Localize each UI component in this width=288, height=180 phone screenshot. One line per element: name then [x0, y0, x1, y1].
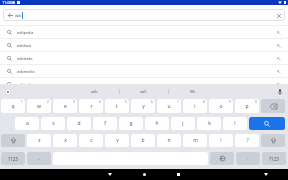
other: Insert suggestion — [274, 54, 283, 63]
staticText: 8 — [203, 100, 205, 104]
button[interactable]: wikipedia commons — [0, 78, 288, 90]
staticText: ? — [246, 137, 249, 144]
button[interactable]: i — [183, 99, 207, 113]
button[interactable]: , — [27, 152, 51, 165]
staticText: 1 — [21, 100, 23, 104]
button[interactable]: p — [235, 99, 259, 113]
button[interactable]: ?123 — [262, 152, 286, 165]
staticText: wik — [91, 89, 98, 95]
staticText: n — [167, 137, 171, 144]
other: Insert suggestion — [274, 80, 283, 89]
staticText: y — [142, 103, 145, 110]
staticText: s — [52, 120, 55, 127]
staticText: z — [38, 137, 41, 144]
button[interactable]: s — [41, 117, 65, 130]
button[interactable] — [1, 134, 25, 147]
button[interactable]: Back — [3, 9, 285, 21]
staticText: will — [140, 89, 147, 95]
other: Insert suggestion — [274, 41, 283, 50]
button[interactable]: ! — [209, 134, 233, 147]
button[interactable]: m — [183, 134, 207, 147]
button[interactable]: d — [67, 117, 91, 130]
button[interactable]: wikimedia — [0, 65, 288, 77]
staticText: 3 — [73, 100, 75, 104]
button[interactable]: c — [79, 134, 103, 147]
staticText: ?123 — [269, 156, 279, 162]
staticText: 4 — [99, 100, 101, 104]
button[interactable]: wik — [70, 84, 119, 99]
staticText: 9 — [229, 100, 231, 104]
staticText: a — [26, 120, 29, 127]
button[interactable]: q — [1, 99, 25, 113]
staticText: wik — [15, 13, 22, 19]
staticText: 6 — [151, 100, 153, 104]
staticText: wikimedia — [17, 69, 35, 74]
button[interactable]: ?123 — [1, 152, 25, 165]
staticText: v — [116, 137, 119, 144]
staticText: 7 — [177, 100, 179, 104]
staticText: u — [167, 103, 171, 110]
staticText: wikipedia commons — [17, 82, 52, 87]
staticText: ?123 — [8, 156, 18, 162]
staticText: 5 — [125, 100, 127, 104]
button[interactable] — [249, 117, 285, 130]
staticText: d — [77, 120, 81, 127]
staticText: i — [194, 103, 196, 110]
button[interactable]: f — [93, 117, 117, 130]
button[interactable]: Hide keyboard — [260, 169, 272, 180]
staticText: 0 — [255, 100, 257, 104]
button[interactable]: will — [119, 84, 168, 99]
button[interactable]: a — [15, 117, 39, 130]
button[interactable]: ? — [235, 134, 259, 147]
button[interactable]: Home — [138, 169, 150, 180]
button[interactable]: h — [145, 117, 169, 130]
button[interactable]: wikihow — [0, 39, 288, 51]
button[interactable]: wikileaks — [0, 52, 288, 64]
staticText: q — [11, 103, 15, 110]
button[interactable]: y — [131, 99, 155, 113]
staticText: m — [193, 137, 198, 144]
button[interactable]: Google assistant — [2, 86, 13, 97]
staticText: ! — [220, 137, 222, 144]
button[interactable]: w — [27, 99, 51, 113]
button[interactable]: x — [53, 134, 77, 147]
button[interactable]: wikipedia — [0, 26, 288, 38]
button[interactable]: Voice search — [274, 86, 285, 97]
button[interactable]: e — [53, 99, 77, 113]
staticText: Wi — [190, 89, 195, 95]
staticText: k — [208, 120, 211, 127]
button[interactable]: k — [197, 117, 221, 130]
staticText: w — [37, 103, 41, 110]
button[interactable]: z — [27, 134, 51, 147]
staticText: g — [129, 120, 133, 127]
button[interactable]: v — [105, 134, 129, 147]
button[interactable]: j — [171, 117, 195, 130]
button[interactable]: Back — [104, 169, 116, 180]
button[interactable]: t — [105, 99, 129, 113]
button[interactable]: b — [131, 134, 155, 147]
other: Insert suggestion — [274, 67, 283, 76]
button[interactable]: Clear search — [274, 11, 283, 20]
button[interactable]: r — [79, 99, 103, 113]
button[interactable]: o — [209, 99, 233, 113]
button[interactable]: g — [119, 117, 143, 130]
button[interactable] — [210, 152, 234, 165]
staticText: , — [38, 155, 40, 162]
other: Insert suggestion — [274, 28, 283, 37]
staticText: . — [247, 155, 249, 162]
button[interactable]: Recent apps — [172, 169, 184, 180]
staticText: x — [64, 137, 67, 144]
button[interactable] — [261, 99, 285, 113]
button[interactable]: u — [157, 99, 181, 113]
button[interactable]: l — [223, 117, 247, 130]
staticText: p — [245, 103, 249, 110]
staticText: 2 — [47, 100, 49, 104]
button[interactable] — [261, 134, 285, 147]
staticText: t — [116, 103, 118, 110]
staticText: 11:08 — [2, 0, 12, 5]
button[interactable]: Back — [6, 11, 15, 20]
button[interactable]: n — [157, 134, 181, 147]
button[interactable]: Wi — [168, 84, 217, 99]
